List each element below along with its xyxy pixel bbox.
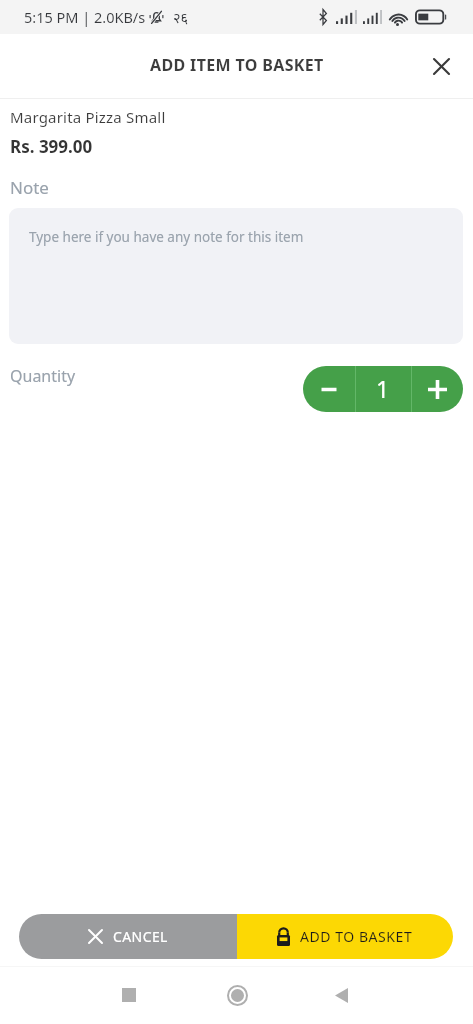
button[interactable]: Decrease quantity [303,366,355,412]
staticText: 5:15 PM | 2.0KB/s [24,7,146,27]
staticText: २६ [173,7,189,27]
button[interactable]: Recents [106,972,152,1018]
staticText: CANCEL [113,927,168,946]
button[interactable]: Close [422,48,458,84]
staticText: Quantity [10,365,76,387]
staticText: Margarita Pizza Small [10,107,166,127]
button[interactable]: Back [318,972,364,1018]
staticText: Type here if you have any note for this … [29,228,304,246]
button[interactable]: ADD TO BASKET [237,914,453,959]
staticText: ADD TO BASKET [300,927,413,946]
button[interactable]: Home [214,972,260,1018]
button[interactable]: CANCEL [19,914,237,959]
staticText: ADD ITEM TO BASKET [150,54,324,76]
button[interactable]: Increase quantity [412,366,463,412]
button[interactable]: Type here if you have any note for this … [9,208,463,344]
staticText: 1 [376,373,390,404]
staticText: Note [10,176,49,199]
staticText: Rs. 399.00 [10,135,93,158]
